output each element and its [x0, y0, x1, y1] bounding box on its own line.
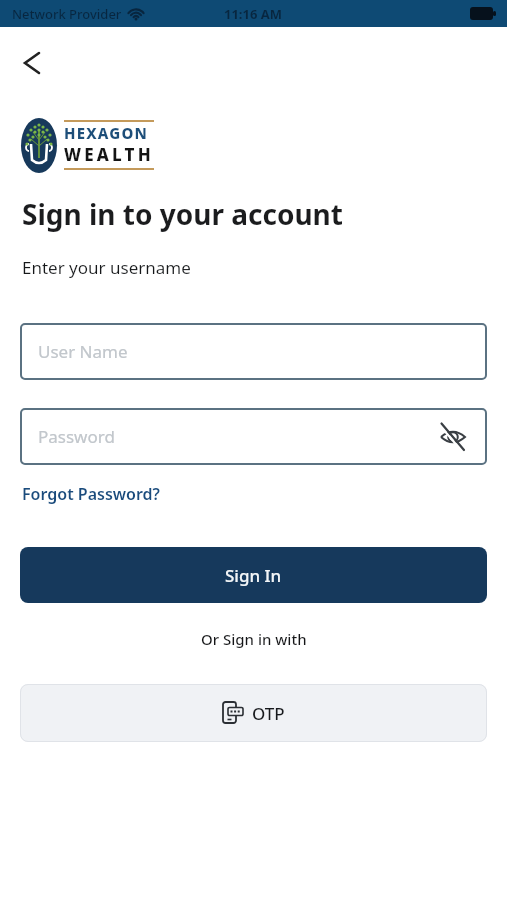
- staticText: Sign In: [225, 564, 282, 587]
- staticText: 11:16 AM: [224, 5, 283, 23]
- staticText: HEXAGON: [64, 123, 149, 143]
- button[interactable]: [14, 45, 50, 81]
- button[interactable]: Password: [20, 408, 487, 465]
- staticText: Network Provider: [12, 5, 122, 23]
- staticText: WEALTH: [64, 143, 154, 166]
- button[interactable]: User Name: [20, 323, 487, 380]
- button[interactable]: Sign In: [20, 547, 487, 603]
- staticText: Enter your username: [22, 256, 191, 279]
- staticText: OTP: [252, 702, 285, 725]
- staticText: Or Sign in with: [201, 629, 307, 649]
- staticText: User Name: [38, 340, 128, 363]
- staticText: Sign in to your account: [22, 195, 343, 233]
- button[interactable]: OTP: [20, 684, 487, 742]
- staticText: Password: [38, 425, 115, 448]
- button[interactable]: Forgot Password?: [22, 483, 160, 505]
